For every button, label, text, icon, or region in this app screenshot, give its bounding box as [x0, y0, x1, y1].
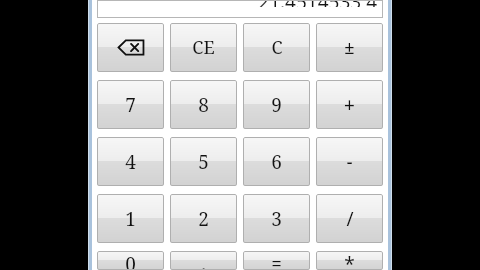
- button[interactable]: CE: [170, 23, 237, 72]
- button[interactable]: +: [316, 80, 383, 129]
- staticText: =: [271, 251, 282, 270]
- button[interactable]: *: [316, 251, 383, 270]
- staticText: 8: [198, 92, 209, 118]
- button[interactable]: C: [243, 23, 310, 72]
- staticText: 0: [125, 251, 136, 270]
- button[interactable]: 8: [170, 80, 237, 129]
- button[interactable]: /: [316, 194, 383, 243]
- button[interactable]: 3: [243, 194, 310, 243]
- staticText: 7: [125, 92, 136, 118]
- staticText: 21.4514533 4: [258, 0, 377, 7]
- button[interactable]: Backspace: [97, 23, 164, 72]
- button[interactable]: ±: [316, 23, 383, 72]
- staticText: +: [344, 92, 355, 118]
- button[interactable]: 9: [243, 80, 310, 129]
- staticText: ±: [344, 35, 355, 60]
- staticText: 2: [198, 206, 209, 232]
- staticText: 3: [271, 206, 282, 232]
- button[interactable]: 6: [243, 137, 310, 186]
- staticText: C: [271, 35, 283, 60]
- staticText: .: [201, 251, 206, 270]
- button[interactable]: 21.4514533 4: [97, 0, 383, 18]
- staticText: *: [344, 251, 355, 270]
- staticText: CE: [192, 35, 215, 60]
- staticText: 6: [271, 149, 282, 175]
- button[interactable]: 4: [97, 137, 164, 186]
- button[interactable]: 0: [97, 251, 164, 270]
- button[interactable]: 1: [97, 194, 164, 243]
- staticText: 4: [125, 149, 136, 175]
- button[interactable]: -: [316, 137, 383, 186]
- staticText: 9: [271, 92, 282, 118]
- button[interactable]: 2: [170, 194, 237, 243]
- staticText: 1: [125, 206, 136, 232]
- staticText: -: [346, 149, 353, 175]
- staticText: 5: [198, 149, 209, 175]
- button[interactable]: =: [243, 251, 310, 270]
- button[interactable]: 5: [170, 137, 237, 186]
- staticText: /: [346, 206, 354, 232]
- button[interactable]: .: [170, 251, 237, 270]
- button[interactable]: 7: [97, 80, 164, 129]
